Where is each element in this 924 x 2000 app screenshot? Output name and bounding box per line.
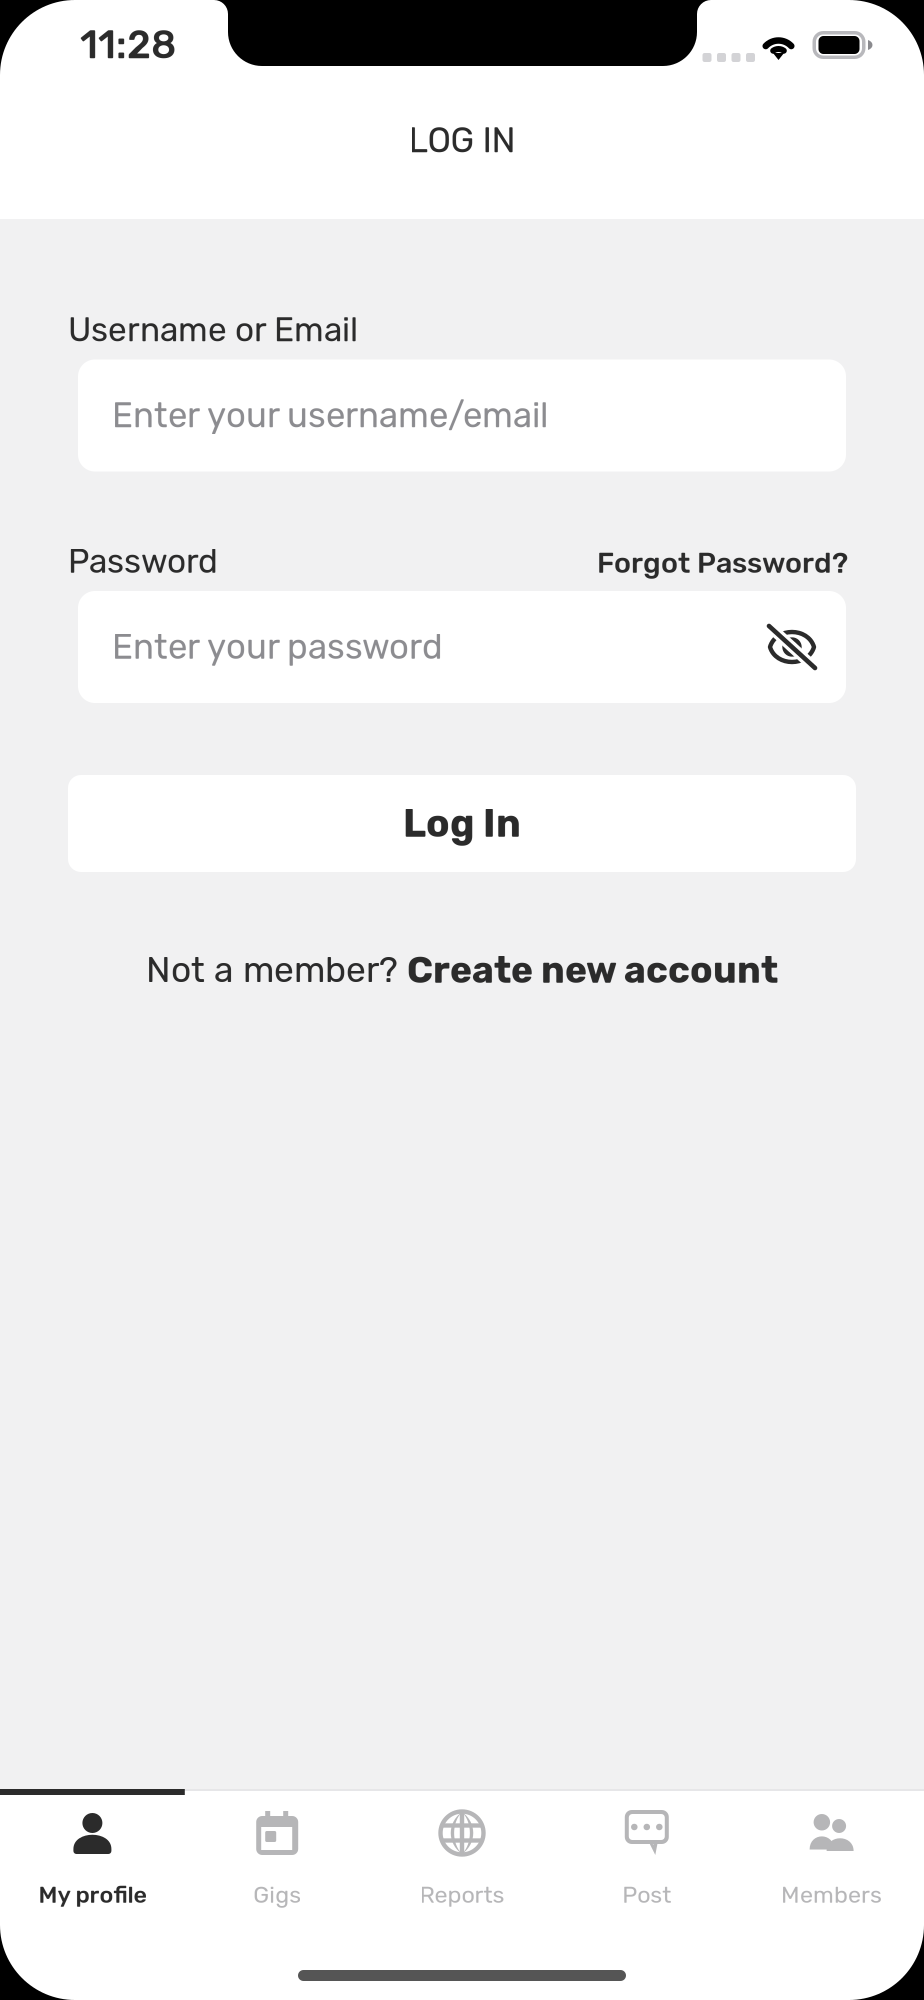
staticText: 11:28 xyxy=(80,22,176,68)
button[interactable]: Enter your username/email xyxy=(78,359,846,471)
staticText: Username or Email xyxy=(68,310,358,349)
button[interactable]: Gigs xyxy=(185,1795,370,1927)
staticText: Forgot Password? xyxy=(597,546,848,580)
button[interactable]: Not a member? xyxy=(146,948,778,992)
staticText: Log In xyxy=(403,801,521,846)
staticText: Create new account xyxy=(407,948,778,992)
button[interactable]: Forgot Password? xyxy=(597,546,848,580)
staticText: LOG IN xyxy=(408,120,515,161)
button[interactable]: Enter your password xyxy=(78,591,846,703)
staticText: Enter your password xyxy=(112,626,443,668)
staticText: My profile xyxy=(38,1881,146,1909)
staticText: Members xyxy=(781,1881,882,1909)
button[interactable]: Post xyxy=(554,1795,739,1927)
button[interactable]: Reports xyxy=(370,1795,554,1927)
button[interactable]: My profile xyxy=(0,1795,185,1927)
staticText: Reports xyxy=(419,1881,504,1909)
button[interactable]: Members xyxy=(739,1795,924,1927)
staticText: Not a member? xyxy=(146,949,407,991)
staticText: Password xyxy=(68,541,218,581)
staticText: Enter your username/email xyxy=(112,395,548,436)
staticText: Post xyxy=(622,1881,671,1909)
button[interactable]: Log In xyxy=(68,775,856,872)
staticText: Gigs xyxy=(253,1881,301,1909)
